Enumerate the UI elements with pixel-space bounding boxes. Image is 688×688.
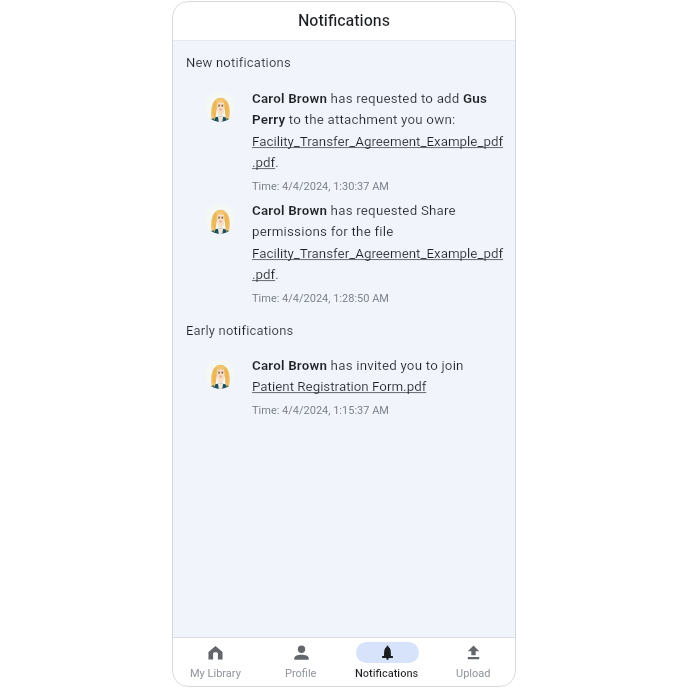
staticText: Facility_Transfer_Agreement_Example_pdf xyxy=(252,246,504,262)
staticText: Time: 4/4/2024, 1:15:37 AM xyxy=(252,404,389,417)
staticText: Profile xyxy=(285,667,317,680)
staticText: Notifications xyxy=(298,11,390,30)
button[interactable]: Carol Brown has requested Share xyxy=(172,198,516,308)
button[interactable]: Upload xyxy=(430,638,516,687)
staticText: Carol Brown has invited you to join xyxy=(252,358,464,374)
staticText: .pdf. xyxy=(252,155,279,171)
staticText: New notifications xyxy=(186,55,291,70)
staticText: Carol Brown has requested to add Gus xyxy=(252,91,488,107)
button[interactable]: Carol Brown has requested to add Gus xyxy=(172,86,516,196)
staticText: Facility_Transfer_Agreement_Example_pdf xyxy=(252,134,504,150)
staticText: Early notifications xyxy=(186,323,294,338)
button[interactable]: Carol Brown has invited you to join xyxy=(172,353,516,420)
staticText: Carol Brown has requested Share xyxy=(252,203,456,219)
button[interactable]: Profile xyxy=(258,638,344,687)
staticText: Time: 4/4/2024, 1:28:50 AM xyxy=(252,292,389,305)
staticText: Patient Registration Form.pdf xyxy=(252,379,427,395)
button[interactable]: My Library xyxy=(172,638,258,687)
staticText: Time: 4/4/2024, 1:30:37 AM xyxy=(252,180,389,193)
staticText: permissions for the file xyxy=(252,224,394,240)
staticText: Notifications xyxy=(355,667,419,680)
staticText: My Library xyxy=(190,667,241,680)
staticText: .pdf. xyxy=(252,267,279,283)
staticText: Perry to the attachment you own: xyxy=(252,112,456,128)
button[interactable]: Notifications xyxy=(344,638,430,687)
staticText: Upload xyxy=(456,667,491,680)
